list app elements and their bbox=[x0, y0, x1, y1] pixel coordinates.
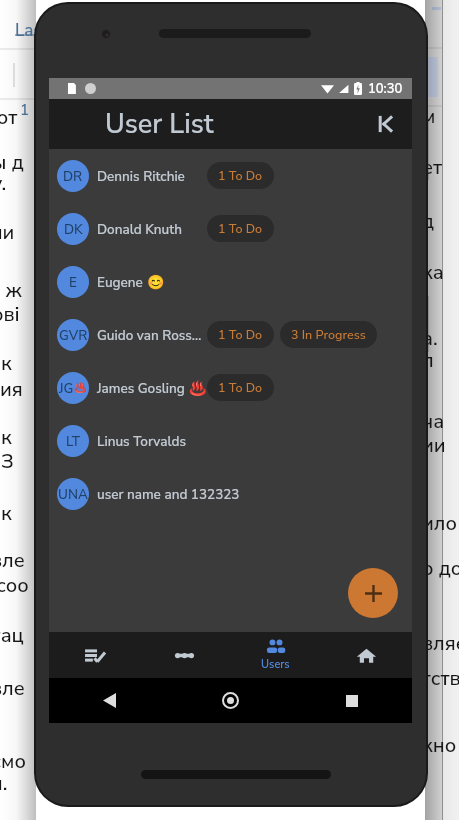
staticText: али bbox=[0, 219, 15, 246]
staticText: ча bbox=[422, 408, 445, 435]
staticText: сь ж bbox=[0, 277, 22, 304]
staticText: ия. bbox=[0, 770, 8, 797]
staticText: 1 To Do bbox=[218, 220, 263, 237]
staticText: James Gosling bbox=[97, 379, 185, 397]
staticText: сок bbox=[0, 500, 12, 527]
staticText: LT bbox=[66, 432, 80, 450]
staticText: атия bbox=[0, 376, 23, 403]
staticText: 1 To Do bbox=[218, 326, 263, 343]
staticText: Donald Knuth bbox=[97, 220, 182, 238]
staticText: ка bbox=[422, 259, 444, 286]
staticText: ии bbox=[422, 432, 446, 459]
staticText: ♨️ bbox=[189, 380, 207, 396]
staticText: UNA bbox=[58, 485, 88, 503]
button[interactable]: Tasks bbox=[49, 632, 139, 678]
staticText: 1 bbox=[20, 100, 30, 120]
staticText: User List bbox=[105, 106, 214, 143]
button[interactable]: Add user bbox=[348, 568, 398, 618]
staticText: игац bbox=[0, 622, 24, 649]
staticText: E bbox=[69, 273, 77, 291]
staticText: гств bbox=[422, 665, 459, 692]
button[interactable]: E bbox=[49, 255, 412, 308]
staticText: 1 To Do bbox=[218, 167, 263, 184]
staticText: осмо bbox=[0, 748, 26, 775]
button[interactable]: DK bbox=[49, 202, 412, 255]
staticText: сок bbox=[0, 424, 12, 451]
button[interactable]: 1 To Do bbox=[207, 321, 274, 348]
staticText: DR bbox=[63, 167, 83, 185]
button[interactable]: LT bbox=[49, 414, 412, 467]
staticText: 3 In Progress bbox=[291, 326, 366, 343]
staticText: Linus Torvalds bbox=[97, 432, 186, 450]
button[interactable]: 1 To Do bbox=[207, 162, 274, 189]
button[interactable]: DR bbox=[49, 149, 412, 202]
staticText: сок bbox=[0, 350, 12, 377]
staticText: д bbox=[422, 208, 435, 235]
staticText: ет bbox=[422, 154, 443, 181]
staticText: Las bbox=[15, 19, 42, 42]
staticText: о до bbox=[422, 555, 459, 582]
button[interactable]: In progress bbox=[139, 632, 230, 678]
staticText: 1 To Do bbox=[218, 379, 263, 396]
staticText: 😊 bbox=[147, 274, 165, 290]
button[interactable]: Back bbox=[49, 678, 170, 723]
staticText: Eugene bbox=[97, 273, 143, 291]
button[interactable]: GVR bbox=[49, 308, 412, 361]
button[interactable]: 3 In Progress bbox=[280, 321, 377, 348]
staticText: ило bbox=[422, 510, 457, 537]
staticText: user name and 132323 bbox=[97, 485, 240, 503]
staticText: о от bbox=[0, 104, 18, 131]
staticText: нові bbox=[0, 301, 20, 328]
staticText: а. bbox=[422, 325, 438, 352]
staticText: л bbox=[422, 347, 434, 374]
staticText: кно п bbox=[422, 732, 459, 759]
staticText: GVR bbox=[59, 326, 88, 344]
button[interactable]: 1 To Do bbox=[207, 215, 274, 242]
staticText: ♨️ bbox=[74, 382, 87, 394]
staticText: лу. bbox=[0, 170, 7, 197]
staticText: Guido van Rossum bbox=[97, 326, 207, 344]
staticText: бы д bbox=[0, 149, 24, 176]
staticText: JG bbox=[59, 379, 74, 397]
staticText: DK bbox=[64, 220, 83, 238]
button[interactable]: Users bbox=[230, 632, 321, 678]
button[interactable]: JG bbox=[49, 361, 412, 414]
button[interactable]: Home bbox=[321, 632, 412, 678]
staticText: м bbox=[422, 103, 436, 130]
staticText: 10:30 bbox=[368, 80, 403, 98]
staticText: я. З bbox=[0, 448, 14, 475]
button[interactable]: 1 To Do bbox=[207, 374, 274, 401]
staticText: вляе bbox=[422, 630, 459, 657]
staticText: авле bbox=[0, 675, 25, 702]
staticText: а соо bbox=[0, 572, 29, 599]
staticText: Users bbox=[261, 657, 290, 672]
button[interactable]: Skip to first bbox=[362, 101, 408, 147]
button[interactable]: Home bbox=[170, 678, 291, 723]
button[interactable]: UNA bbox=[49, 467, 412, 520]
button[interactable]: Recent apps bbox=[291, 678, 412, 723]
staticText: авле bbox=[0, 547, 25, 574]
staticText: Dennis Ritchie bbox=[97, 167, 185, 185]
